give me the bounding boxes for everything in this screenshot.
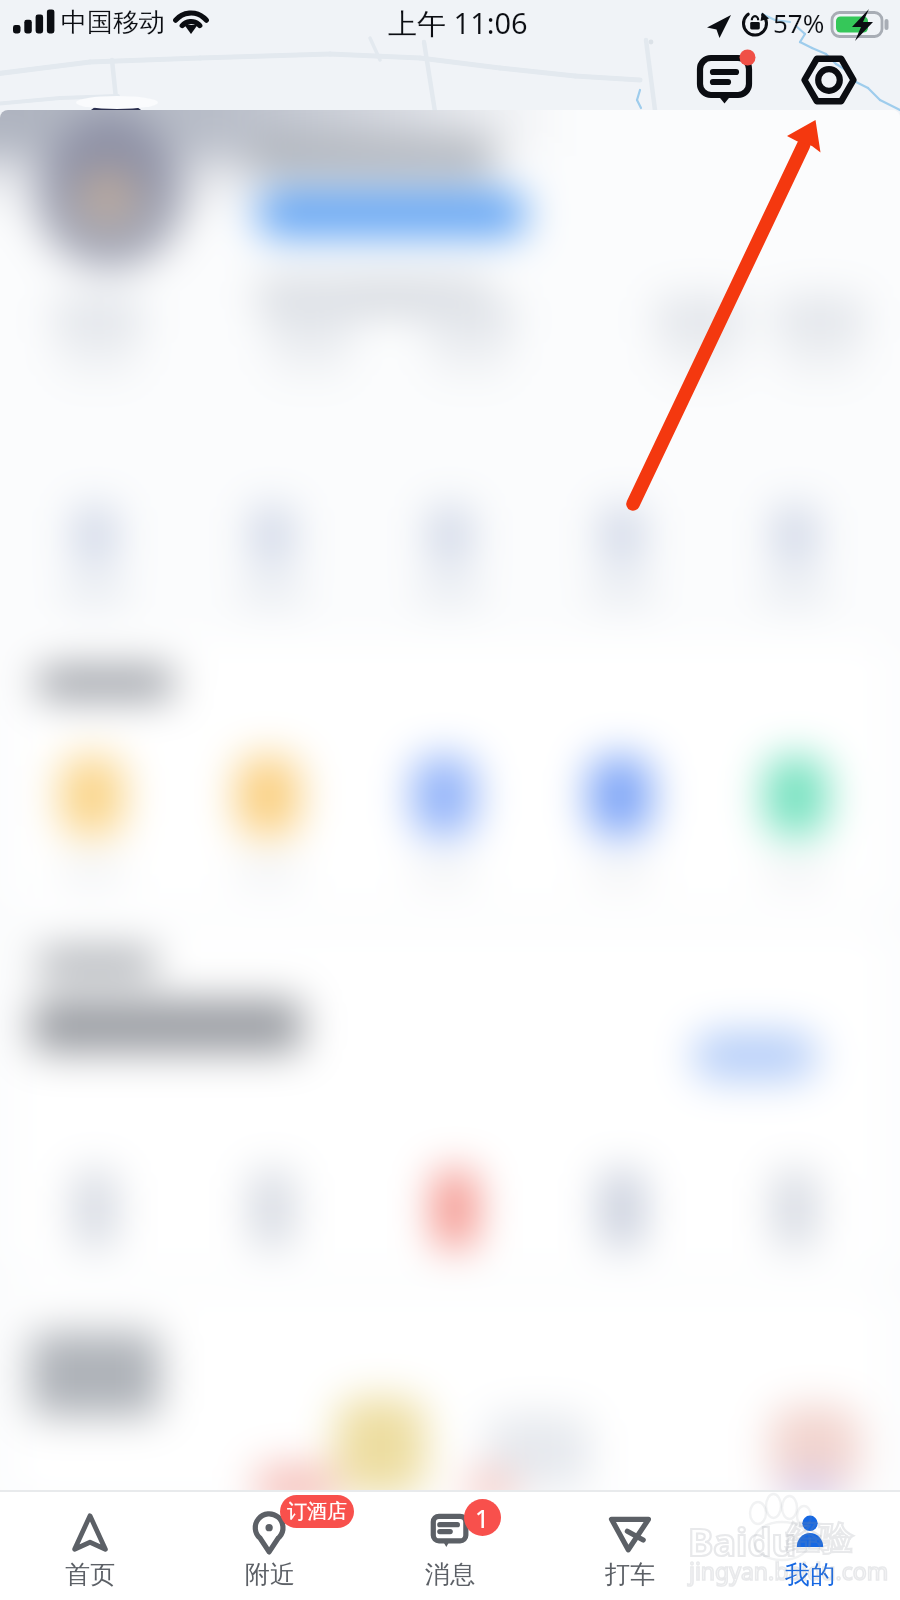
button[interactable]: Settings [797, 46, 863, 112]
staticText: 订酒店 [287, 1499, 347, 1524]
staticText: 57% [773, 5, 825, 40]
staticText: 上午 11:06 [388, 3, 528, 43]
staticText: 打车 [605, 1559, 655, 1590]
staticText: 首页 [65, 1559, 115, 1590]
button[interactable]: 我的 [720, 1490, 900, 1600]
button[interactable]: Messages [688, 46, 762, 120]
staticText: 附近 [245, 1559, 295, 1590]
staticText: 经验 [786, 1518, 852, 1560]
staticText: Baidu [688, 1515, 797, 1567]
button[interactable]: 打车 [540, 1490, 720, 1600]
staticText: 中国移动 [61, 6, 165, 39]
staticText: 我的 [785, 1559, 835, 1590]
button[interactable]: 首页 [0, 1490, 180, 1600]
staticText: 消息 [425, 1559, 475, 1590]
button[interactable]: 消息 [360, 1490, 540, 1600]
button[interactable]: 附近 [180, 1490, 360, 1600]
staticText: jingyan.baidu.com [689, 1555, 889, 1586]
staticText: 1 [475, 1501, 490, 1535]
